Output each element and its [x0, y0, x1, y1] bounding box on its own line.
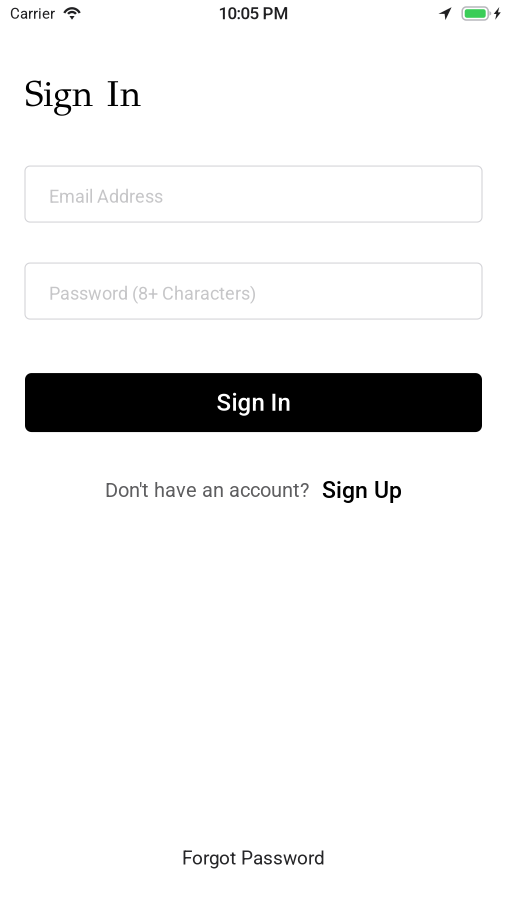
staticText: Email Address	[49, 186, 163, 207]
staticText: Sign In	[216, 388, 290, 417]
staticText: 10:05 PM	[218, 4, 288, 23]
button[interactable]: Forgot Password	[0, 841, 507, 875]
staticText: Don't have an account?	[105, 478, 309, 502]
staticText: Sign In	[25, 72, 141, 116]
button[interactable]: Email Address	[25, 166, 482, 222]
button[interactable]: Password (8+ Characters)	[25, 263, 482, 319]
staticText: Password (8+ Characters)	[49, 283, 256, 304]
staticText: Forgot Password	[182, 847, 325, 869]
staticText: Carrier	[10, 4, 55, 22]
button[interactable]: Sign In	[25, 373, 482, 432]
staticText: Sign Up	[322, 476, 402, 504]
button[interactable]: Don't have an account?	[0, 474, 507, 506]
